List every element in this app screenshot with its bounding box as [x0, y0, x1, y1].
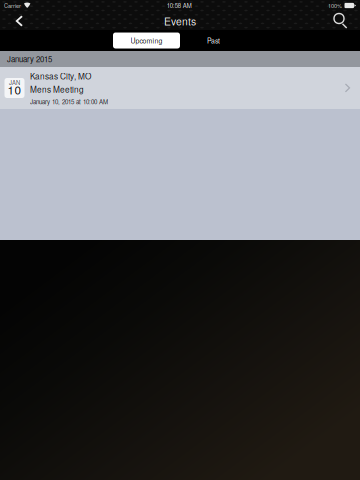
staticText: 10: [7, 81, 21, 98]
staticText: Events: [164, 14, 196, 28]
staticText: Kansas City, MO: [30, 70, 91, 82]
staticText: Past: [207, 35, 220, 45]
button[interactable]: JAN: [0, 67, 360, 109]
staticText: Upcoming: [130, 35, 162, 45]
button[interactable]: Back: [0, 12, 38, 30]
button[interactable]: Upcoming: [113, 32, 180, 48]
button[interactable]: Past: [180, 32, 247, 48]
staticText: 100%: [328, 1, 342, 9]
staticText: January 2015: [7, 53, 52, 65]
staticText: JAN: [9, 78, 20, 87]
button[interactable]: Search: [322, 12, 360, 30]
staticText: Carrier: [4, 1, 21, 9]
staticText: Mens Meeting: [30, 83, 84, 95]
staticText: 10:58 AM: [167, 1, 192, 10]
staticText: January 10, 2015 at 10:00 AM: [30, 97, 108, 106]
